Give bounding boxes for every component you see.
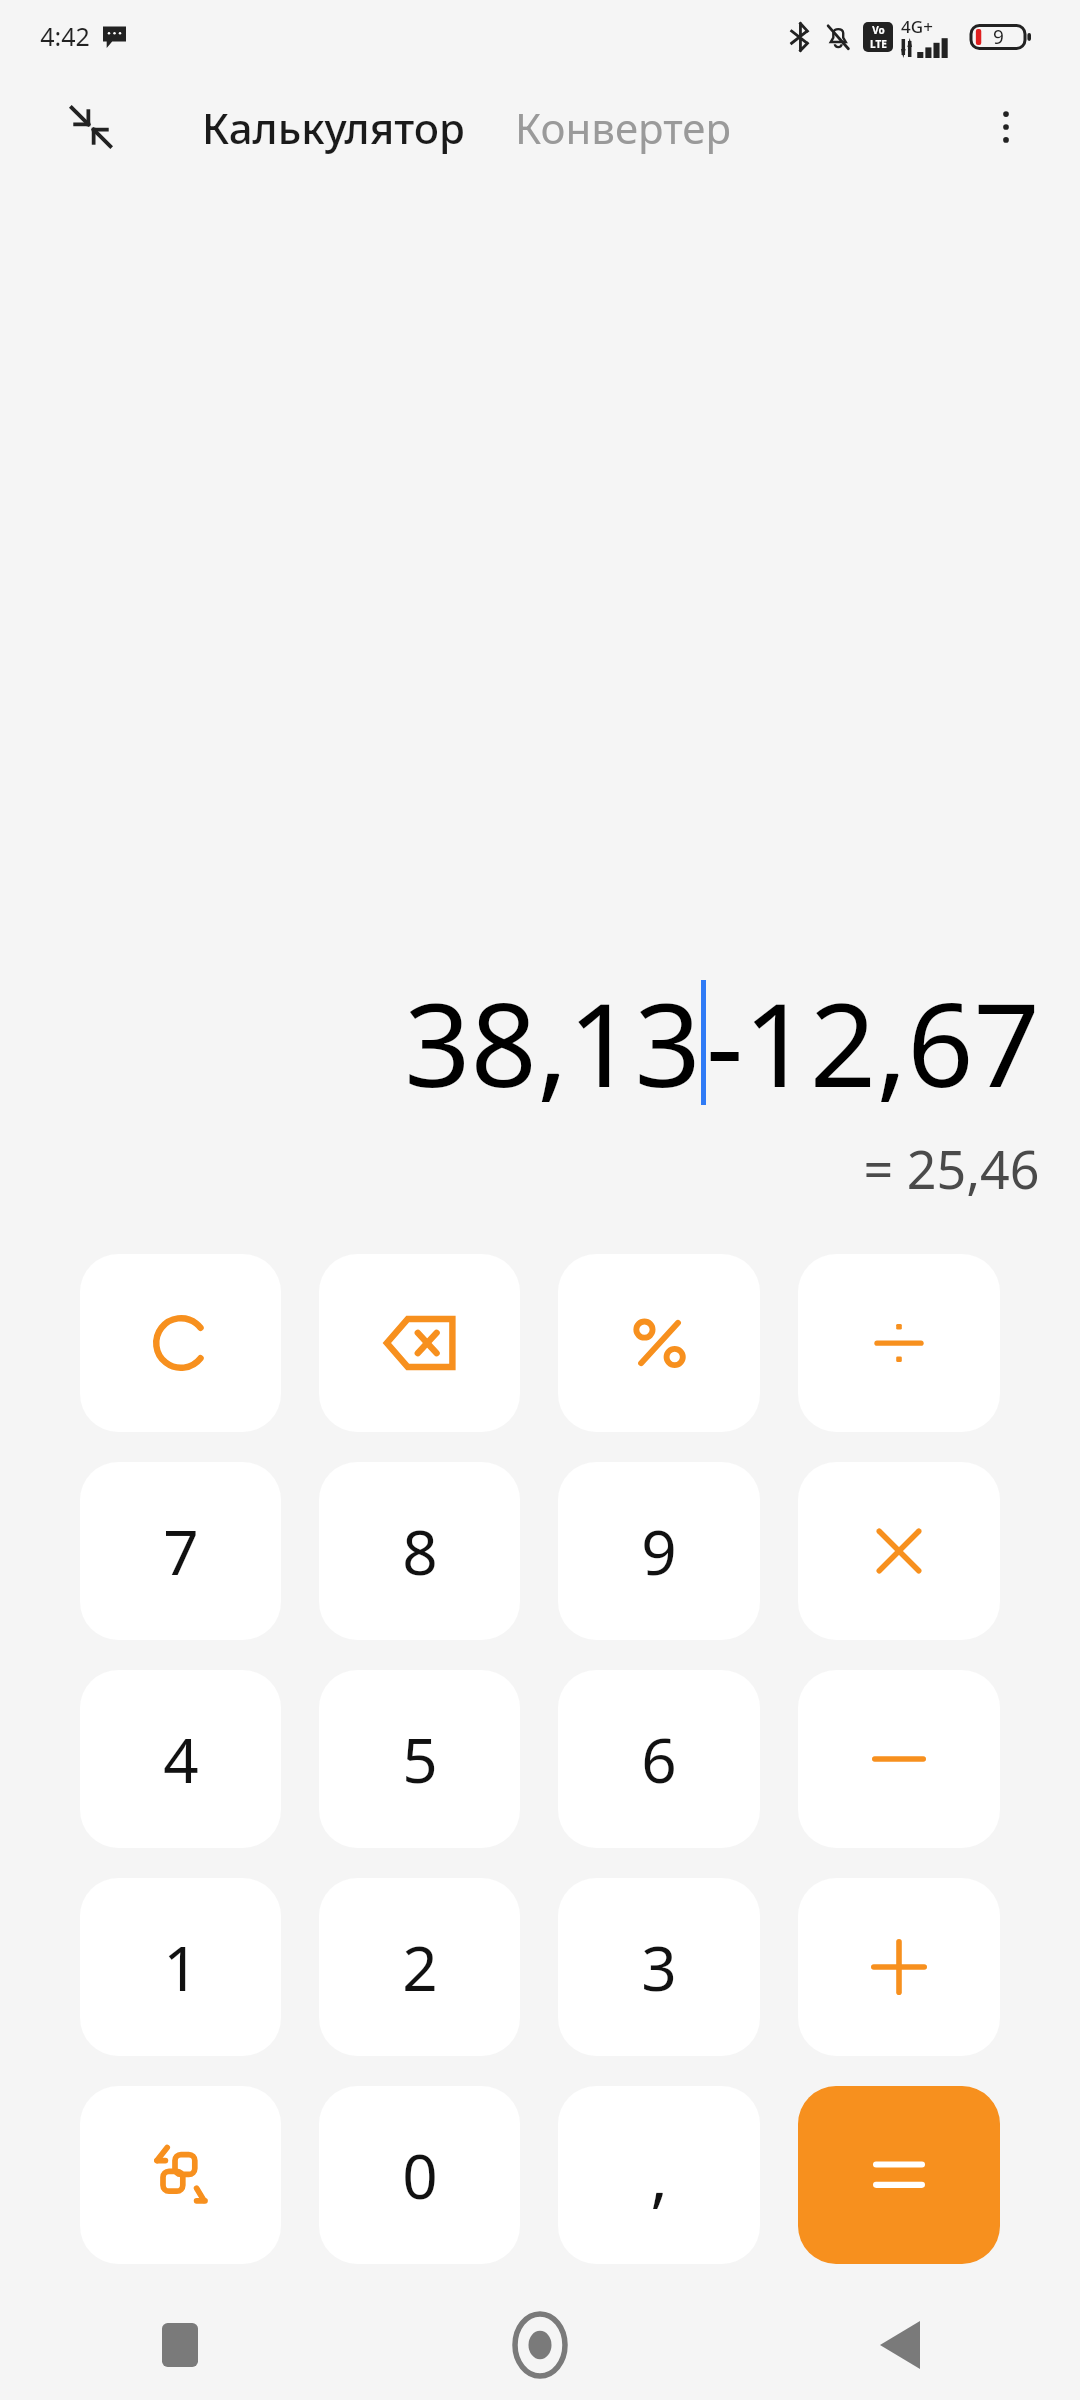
button[interactable]: , xyxy=(558,2086,760,2264)
button[interactable]: 5 xyxy=(319,1670,520,1848)
staticText: LTE xyxy=(870,37,887,51)
button[interactable]: 9 xyxy=(558,1462,760,1640)
staticText: 38,13 xyxy=(404,963,701,1121)
button[interactable]: 6 xyxy=(558,1670,760,1848)
staticText: 3 xyxy=(641,1925,677,2009)
button[interactable]: Конвертер xyxy=(511,91,735,164)
staticText: Vo xyxy=(872,23,885,37)
staticText: , xyxy=(650,2130,668,2220)
button[interactable]: Равно xyxy=(798,2086,1000,2264)
button[interactable]: Свернуть xyxy=(62,98,120,156)
button[interactable]: Назад xyxy=(720,2290,1080,2400)
staticText: 6 xyxy=(641,1717,677,1801)
staticText: = 25,46 xyxy=(863,1133,1040,1204)
button[interactable]: Минус xyxy=(798,1670,1000,1848)
button[interactable]: 2 xyxy=(319,1878,520,2056)
button[interactable]: 0 xyxy=(319,2086,520,2264)
button[interactable]: 7 xyxy=(80,1462,281,1640)
staticText: 9 xyxy=(993,24,1004,50)
button[interactable]: Плюс xyxy=(798,1878,1000,2056)
staticText: 7 xyxy=(163,1509,199,1593)
staticText: Конвертер xyxy=(515,99,731,156)
button[interactable]: Главный экран xyxy=(360,2290,720,2400)
button[interactable]: Удалить xyxy=(319,1254,520,1432)
button[interactable]: Умножить xyxy=(798,1462,1000,1640)
button[interactable]: Скобки xyxy=(80,2086,281,2264)
button[interactable]: Недавние xyxy=(0,2290,360,2400)
staticText: 5 xyxy=(402,1717,438,1801)
button[interactable]: Очистить xyxy=(80,1254,281,1432)
button[interactable]: Калькулятор xyxy=(198,91,469,164)
button[interactable]: 1 xyxy=(80,1878,281,2056)
staticText: 2 xyxy=(402,1925,438,2009)
staticText: 0 xyxy=(402,2133,438,2217)
staticText: 1 xyxy=(163,1925,199,2009)
button[interactable]: 8 xyxy=(319,1462,520,1640)
button[interactable]: Процент xyxy=(558,1254,760,1432)
button[interactable]: 3 xyxy=(558,1878,760,2056)
staticText: 4:42 xyxy=(40,19,90,53)
button[interactable]: Ещё xyxy=(976,97,1036,157)
staticText: Калькулятор xyxy=(202,99,465,156)
staticText: -12,67 xyxy=(706,963,1040,1121)
staticText: 4 xyxy=(163,1717,199,1801)
staticText: 8 xyxy=(402,1509,438,1593)
staticText: 4G+ xyxy=(901,15,933,38)
button[interactable]: 4 xyxy=(80,1670,281,1848)
button[interactable]: Разделить xyxy=(798,1254,1000,1432)
staticText: 9 xyxy=(641,1509,677,1593)
